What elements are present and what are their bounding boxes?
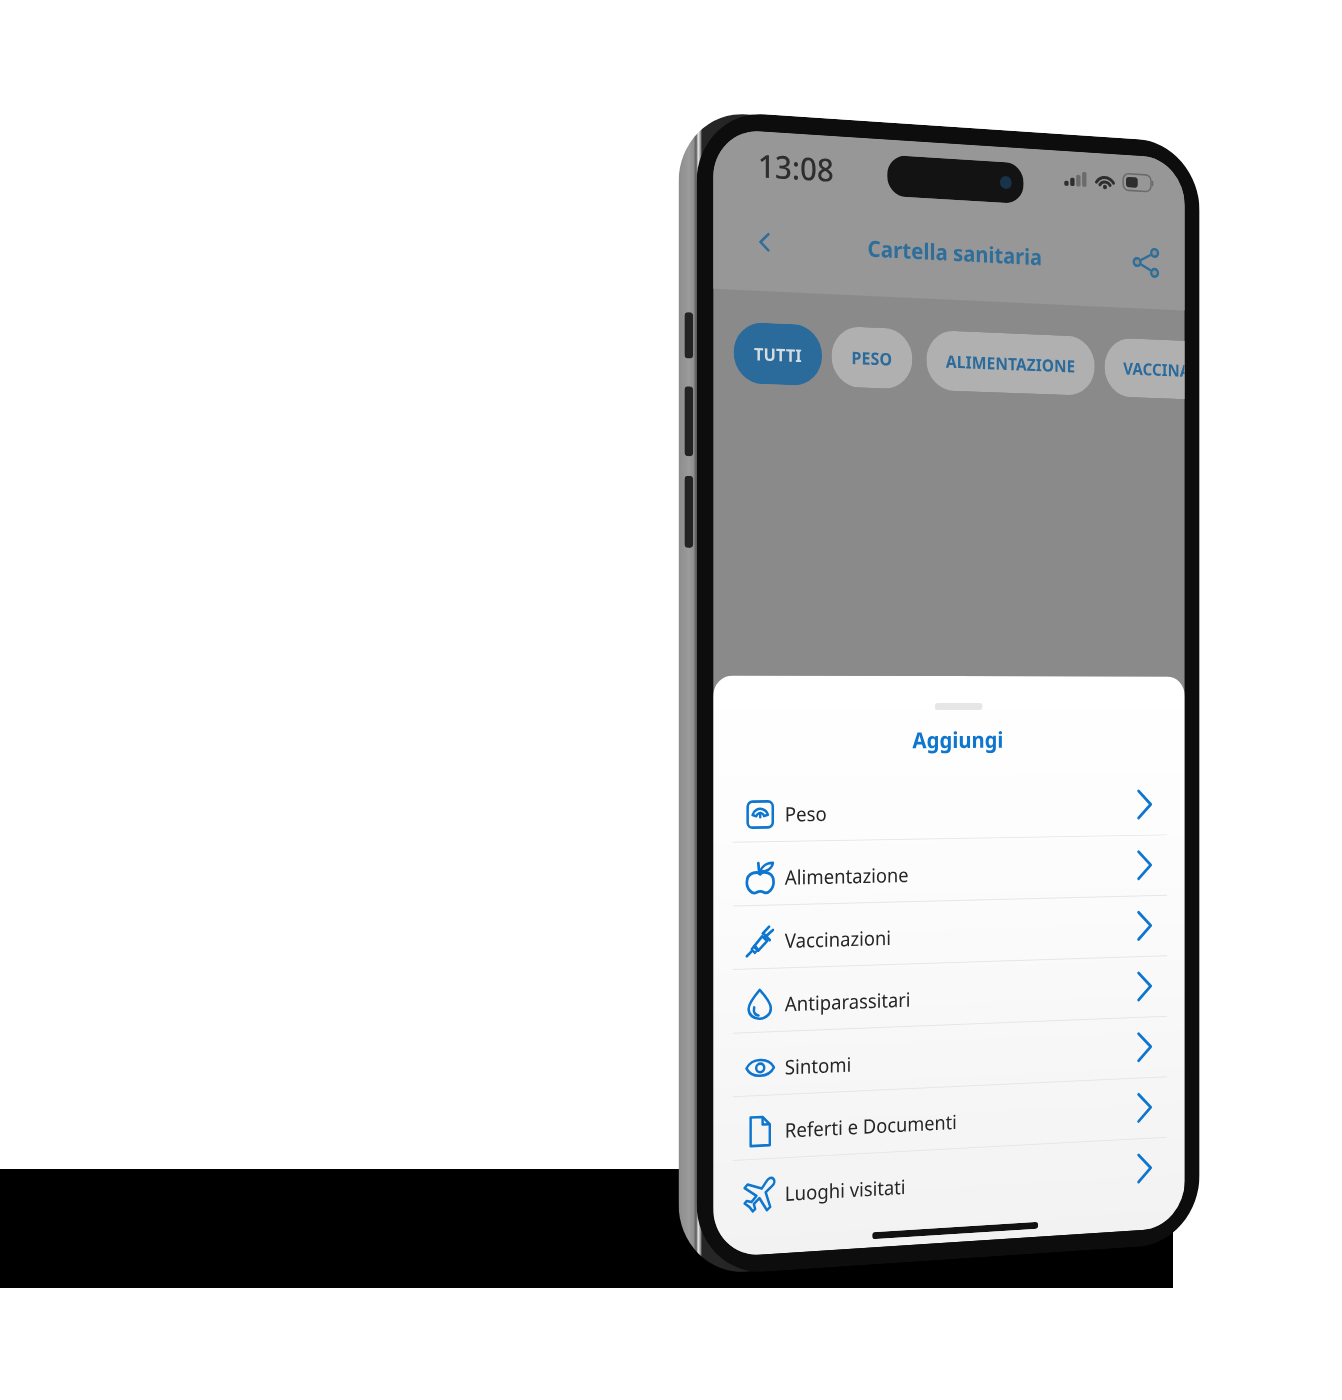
staticText: Sintomi (785, 1050, 851, 1081)
staticText: Antiparassitari (785, 985, 911, 1017)
button[interactable]: TUTTI (734, 322, 822, 386)
button[interactable]: ALIMENTAZIONE (926, 330, 1095, 396)
button[interactable]: Referti e Documenti (713, 1075, 1185, 1161)
button[interactable]: Share (1127, 239, 1165, 284)
button[interactable]: Back (744, 219, 785, 264)
staticText: Referti e Documenti (785, 1108, 957, 1144)
staticText: Vaccinazioni (785, 924, 892, 954)
staticText: Alimentazione (785, 861, 909, 891)
staticText: PESO (851, 346, 893, 371)
button[interactable]: VACCINAZIONI (1104, 337, 1185, 399)
staticText: Aggiungi (912, 724, 1004, 754)
button[interactable]: Sintomi (713, 1015, 1185, 1097)
button[interactable]: Peso (713, 774, 1185, 842)
staticText: 13:08 (758, 143, 834, 191)
staticText: ALIMENTAZIONE (946, 350, 1076, 377)
button[interactable]: PESO (831, 326, 912, 389)
staticText: Cartella sanitaria (867, 232, 1043, 271)
button[interactable]: Vaccinazioni (713, 894, 1185, 970)
button[interactable]: Antiparassitari (713, 955, 1185, 1033)
staticText: VACCINAZIONI (1123, 357, 1185, 382)
staticText: Peso (785, 800, 827, 828)
button[interactable]: Alimentazione (713, 834, 1185, 906)
staticText: Luoghi visitati (785, 1173, 906, 1207)
button[interactable]: Luoghi visitati (713, 1136, 1185, 1225)
staticText: TUTTI (754, 342, 802, 367)
